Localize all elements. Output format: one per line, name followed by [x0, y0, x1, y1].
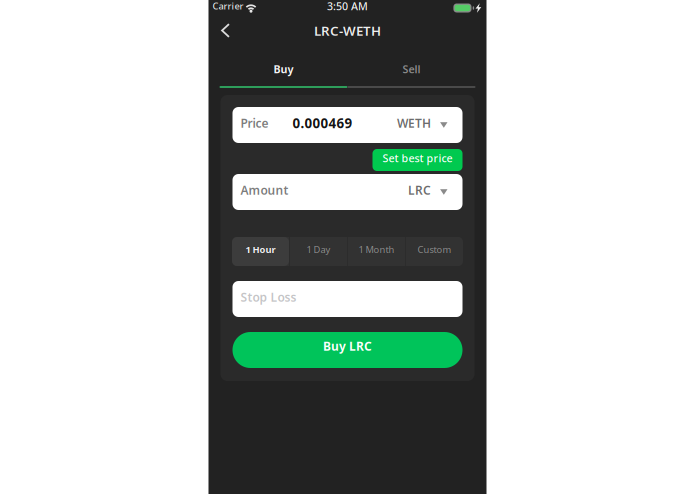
staticText: Price	[240, 115, 268, 131]
staticText: 1 Day	[306, 243, 330, 256]
staticText: Sell	[402, 62, 420, 76]
staticText: Custom	[417, 243, 451, 256]
staticText: Amount	[240, 182, 288, 198]
button[interactable]: 1 Day	[290, 237, 347, 266]
staticText: Buy	[273, 62, 293, 76]
staticText: Buy LRC	[323, 338, 372, 354]
button[interactable]: Set best price	[372, 149, 462, 171]
staticText: 1 Hour	[245, 243, 275, 256]
button[interactable]: Buy LRC	[232, 332, 462, 368]
button[interactable]: Price	[232, 107, 462, 143]
staticText: Carrier	[212, 0, 243, 12]
button[interactable]: 1 Hour	[232, 237, 289, 266]
button[interactable]: Buy	[219, 52, 347, 86]
staticText: LRC-WETH	[314, 22, 381, 39]
staticText: 3:50 AM	[327, 0, 368, 13]
staticText: Stop Loss	[240, 289, 296, 305]
staticText: 0.000469	[292, 114, 352, 132]
button[interactable]: 1 Month	[348, 237, 405, 266]
button[interactable]: Custom	[406, 237, 463, 266]
staticText: LRC	[408, 182, 431, 198]
button[interactable]: Stop Loss	[232, 281, 462, 317]
staticText: 1 Month	[358, 243, 394, 256]
button[interactable]: Amount	[232, 174, 462, 210]
staticText: WETH	[397, 115, 431, 131]
button[interactable]: Sell	[347, 52, 475, 86]
staticText: Set best price	[382, 151, 452, 165]
button[interactable]: Back	[208, 16, 242, 45]
